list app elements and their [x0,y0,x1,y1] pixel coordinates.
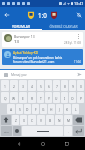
button[interactable]: 9 [69,80,76,91]
staticText: 13:41 [74,1,84,6]
button[interactable]: J [56,104,63,114]
button[interactable]: C [28,115,36,125]
button[interactable]: Bursaspor 13 [2,32,83,47]
button[interactable]: U [53,92,60,103]
button[interactable]: Enter [73,126,84,136]
button[interactable]: More options [76,34,81,39]
button[interactable]: 8 [61,80,68,91]
staticText: SİM [4,130,9,133]
staticText: X [23,118,25,122]
button[interactable]: P [77,92,84,103]
button[interactable]: A [7,104,15,114]
button[interactable]: Recent apps [61,138,72,149]
staticText: V [40,118,42,122]
button[interactable]: S [16,104,23,114]
button[interactable]: 7 [53,80,60,91]
staticText: K [66,107,69,111]
button[interactable]: ÖNEMLİ OLAYLAR [42,22,85,29]
staticText: . [68,129,69,133]
staticText: 0 [80,84,82,88]
button[interactable]: Back [0,8,13,21]
staticText: S [19,107,21,111]
staticText: U [55,96,58,100]
button[interactable]: T [37,92,44,103]
button[interactable]: Back [13,138,24,149]
button[interactable]: Aykut Yoldaş•KD [2,49,83,65]
staticText: 8 [64,84,66,88]
staticText: L [75,107,77,111]
button[interactable]: G [40,104,47,114]
button[interactable]: 2 [10,80,18,91]
button[interactable]: Attach image [2,71,9,78]
staticText: M [67,118,70,122]
staticText: I [64,96,66,100]
button[interactable]: 1 [1,80,9,91]
button[interactable]: O [69,92,76,103]
staticText: B [49,118,52,122]
staticText: E [22,96,24,100]
button[interactable]: D [24,104,31,114]
staticText: 1:0 [38,11,47,19]
button[interactable]: L [72,104,79,114]
staticText: A [10,107,13,111]
button[interactable]: Q [1,92,9,103]
button[interactable]: H [48,104,55,114]
staticText: P [80,96,82,100]
button[interactable]: R [28,92,36,103]
button[interactable]: V [37,115,45,125]
button[interactable]: Backspace [73,115,84,125]
button[interactable]: Send [76,71,83,78]
staticText: 1 [4,84,6,88]
staticText: 7 [56,84,58,88]
staticText: Bursaspor 13 [14,34,35,38]
staticText: Y [48,96,50,100]
button[interactable]: K [64,104,71,114]
button[interactable]: Emoji [13,126,21,136]
button[interactable]: 0 [77,80,84,91]
staticText: G [42,107,45,111]
staticText: Aykut Yoldaş•KD [13,51,39,55]
staticText: F [35,107,37,111]
staticText: Bürsaspor'un çok kazandıran bahis forum … [13,56,63,64]
staticText: Z [15,118,17,122]
button[interactable]: Mute notifications [72,8,85,21]
staticText: 2 [13,84,15,88]
staticText: R [31,96,34,100]
button[interactable]: Y [45,92,52,103]
staticText: H [50,107,53,111]
staticText: 28 Eyl. 11:08 [64,41,81,45]
staticText: 9 [72,84,74,88]
staticText: 3 [22,84,24,88]
staticText: D [26,107,29,111]
button[interactable]: N [55,115,63,125]
button[interactable]: M [64,115,72,125]
staticText: W [12,96,16,100]
button[interactable]: Mesaj yaz [11,70,76,79]
button[interactable]: E [19,92,27,103]
button[interactable]: W [10,92,18,103]
button[interactable]: B [46,115,54,125]
staticText: 6 [48,84,50,88]
button[interactable]: 5 [37,80,44,91]
staticText: C [31,118,34,122]
staticText: J [59,107,60,111]
button[interactable]: Home [37,138,48,149]
button[interactable]: X [20,115,27,125]
button[interactable]: 6 [45,80,52,91]
button[interactable]: I [61,92,68,103]
button[interactable]: F [32,104,39,114]
staticText: YORUMLAR [12,24,30,28]
staticText: T [40,96,42,100]
button[interactable]: Shift [1,115,11,125]
staticText: 5 [40,84,42,88]
button[interactable]: Space [22,126,63,136]
staticText: ÖNEMLİ OLAYLAR [49,24,78,28]
button[interactable]: SİM [1,126,12,136]
button[interactable]: 3 [19,80,27,91]
button[interactable]: Z [12,115,19,125]
staticText: Q [4,96,7,100]
button[interactable]: 4 [28,80,36,91]
staticText: 4 [31,84,33,88]
button[interactable]: YORUMLAR [0,22,42,29]
